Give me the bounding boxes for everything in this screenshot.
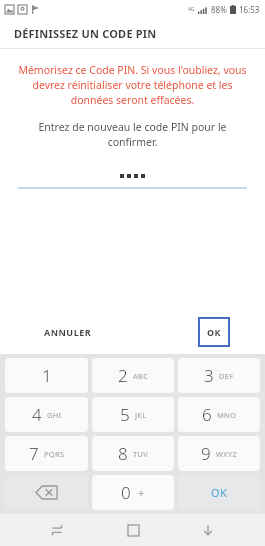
staticText: TUV <box>133 449 149 459</box>
staticText: OK <box>211 485 228 500</box>
staticText: 16:53 <box>239 4 260 15</box>
staticText: Entrez de nouveau le code PIN pour le co… <box>14 120 251 149</box>
staticText: 2 <box>118 364 128 387</box>
staticText: + <box>138 485 145 500</box>
staticText: JKL <box>135 410 147 420</box>
button[interactable]: 2 <box>92 358 174 393</box>
button[interactable]: 8 <box>92 436 174 471</box>
button[interactable]: Supprimer <box>5 475 88 510</box>
staticText: 3 <box>204 364 214 387</box>
staticText: 6 <box>202 403 212 426</box>
staticText: DEF <box>219 371 234 381</box>
staticText: PQRS <box>44 449 65 459</box>
button[interactable]: 6 <box>178 397 260 432</box>
button[interactable]: 4 <box>5 397 88 432</box>
staticText: MNO <box>217 410 237 420</box>
staticText: OK <box>207 326 222 338</box>
button[interactable]: OK <box>198 317 230 347</box>
staticText: ABC <box>133 371 149 381</box>
staticText: 9 <box>201 442 211 465</box>
button[interactable]: Masquer le clavier <box>190 514 226 546</box>
staticText: 5 <box>120 403 130 426</box>
button[interactable]: Accueil <box>115 514 151 546</box>
staticText: 0 <box>121 481 131 504</box>
staticText: 88% <box>211 4 227 15</box>
staticText: 7 <box>29 442 39 465</box>
button[interactable]: 1 <box>5 358 88 393</box>
staticText: 4G <box>188 6 195 13</box>
staticText: GHI <box>47 410 62 420</box>
button[interactable]: 9 <box>178 436 260 471</box>
button[interactable]: 5 <box>92 397 174 432</box>
button[interactable]: 7 <box>5 436 88 471</box>
button[interactable]: Récents <box>39 514 75 546</box>
staticText: DÉFINISSEZ UN CODE PIN <box>14 26 157 41</box>
staticText: 4 <box>32 403 42 426</box>
staticText: Mémorisez ce Code PIN. Si vous l'oubliez… <box>14 63 251 107</box>
staticText: ANNULER <box>44 326 92 338</box>
staticText: 8 <box>118 442 128 465</box>
button[interactable]: ANNULER <box>34 320 102 344</box>
button[interactable]: 0 <box>92 475 174 510</box>
staticText: WXYZ <box>216 449 238 459</box>
staticText: 1 <box>42 364 52 387</box>
button[interactable]: OK <box>178 475 260 510</box>
button[interactable]: 3 <box>178 358 260 393</box>
